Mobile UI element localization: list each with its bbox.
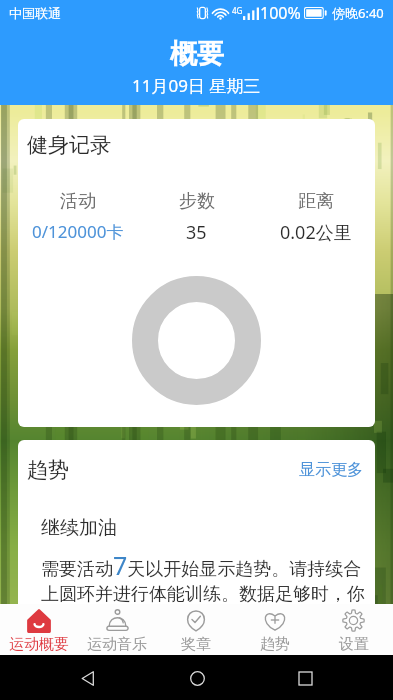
staticText: 0.02公里 <box>280 220 352 245</box>
staticText: 健身记录 <box>27 132 111 158</box>
staticText: 活动 <box>60 190 96 213</box>
button[interactable]: 趋势 <box>235 604 314 655</box>
staticText: 趋势 <box>260 635 290 654</box>
staticText: 继续加油 <box>41 516 117 540</box>
staticText: 步数 <box>179 190 215 213</box>
staticText: 需要活动7天以开始显示趋势。请持续合上圆环并进行体能训练。数据足够时，你 <box>41 555 368 604</box>
button[interactable]: 运动音乐 <box>78 604 156 655</box>
button[interactable]: Recent apps <box>285 658 325 698</box>
staticText: 显示更多 <box>299 460 363 480</box>
staticText: 运动概要 <box>9 635 69 654</box>
button[interactable]: 健身记录 <box>18 119 375 427</box>
staticText: 概要 <box>170 37 224 71</box>
staticText: 35 <box>186 220 207 245</box>
button[interactable]: 设置 <box>314 604 393 655</box>
staticText: 11月09日 星期三 <box>132 74 261 97</box>
staticText: 奖章 <box>181 635 211 654</box>
button[interactable]: 显示更多 <box>299 460 363 480</box>
staticText: 设置 <box>339 635 369 654</box>
staticText: 100% <box>260 2 301 24</box>
staticText: 距离 <box>298 190 334 213</box>
button[interactable]: 运动概要 <box>0 604 78 655</box>
staticText: 4G <box>232 5 243 16</box>
staticText: 0/120000卡 <box>32 220 124 243</box>
staticText: 傍晚6:40 <box>332 4 384 22</box>
button[interactable]: Back <box>68 658 108 698</box>
button[interactable]: Home <box>177 658 217 698</box>
staticText: 运动音乐 <box>87 635 147 654</box>
staticText: 中国联通 <box>9 5 61 21</box>
staticText: 趋势 <box>27 457 69 483</box>
button[interactable]: 奖章 <box>156 604 235 655</box>
